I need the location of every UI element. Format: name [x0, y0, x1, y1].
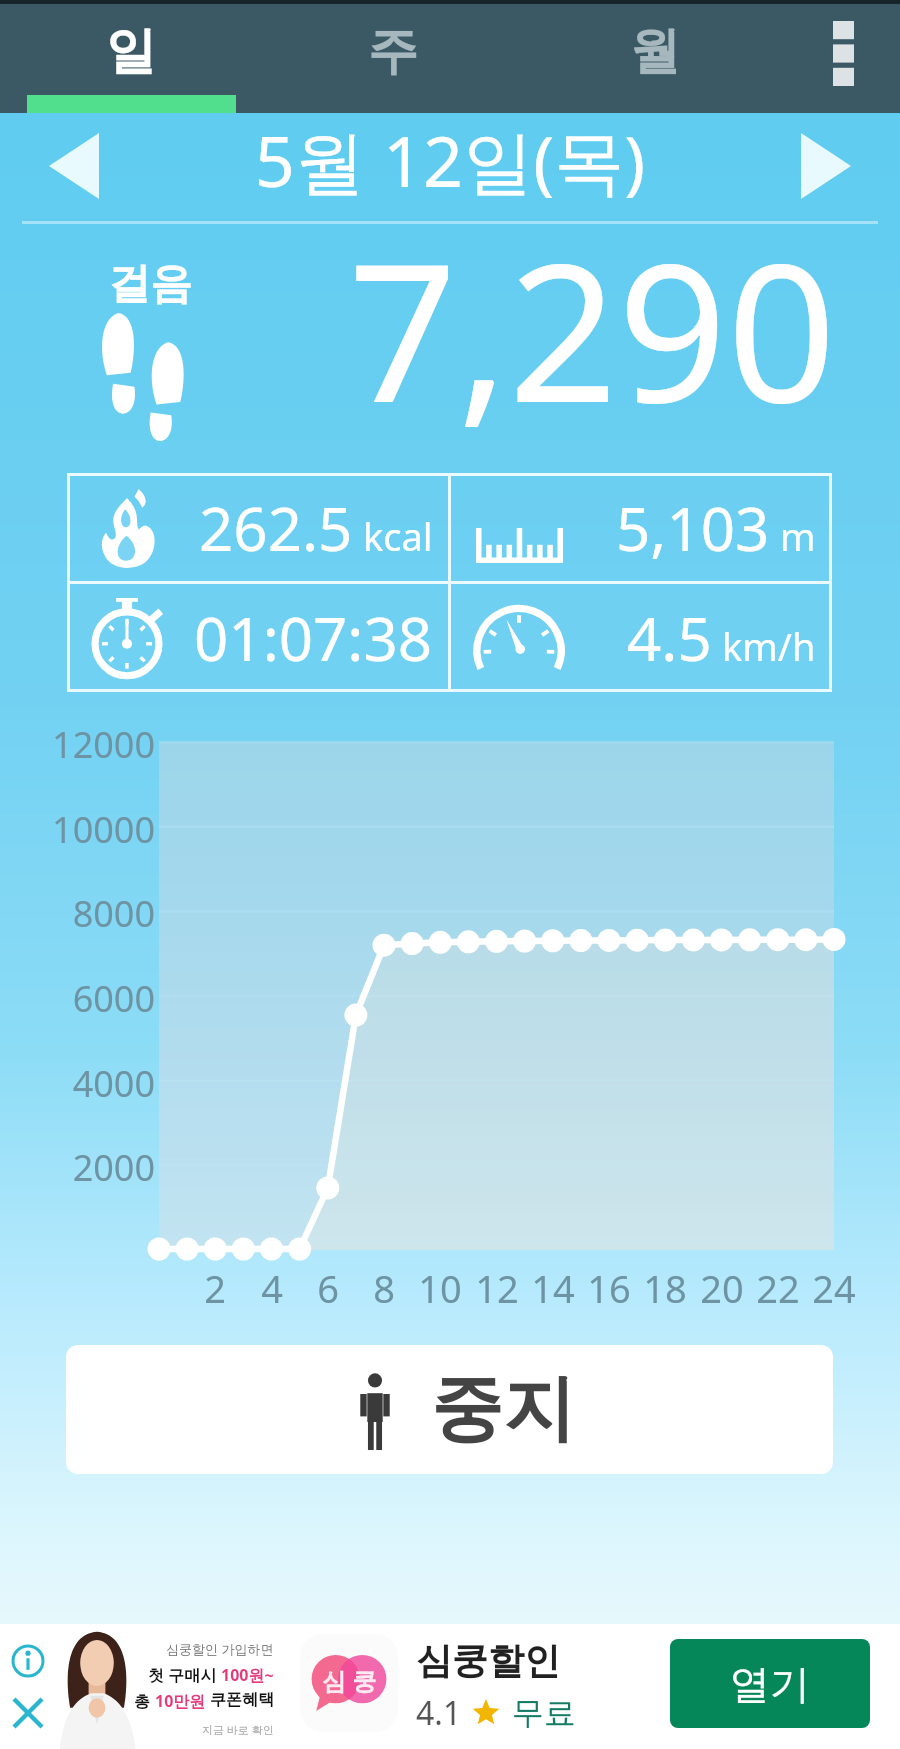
- staticText: km/h: [722, 620, 816, 672]
- button[interactable]: Advertisement: 심쿵할인: [50, 1624, 670, 1749]
- staticText: 10만원: [155, 1690, 210, 1712]
- staticText: 262.5: [199, 487, 353, 569]
- staticText: 4: [232, 1262, 312, 1314]
- staticText: 16: [569, 1262, 649, 1314]
- staticText: 10: [400, 1262, 480, 1314]
- staticText: 7,290: [348, 198, 837, 458]
- staticText: 주: [368, 20, 418, 83]
- button[interactable]: More options: [786, 0, 900, 113]
- staticText: 01:07:38: [194, 597, 433, 679]
- button[interactable]: Previous day: [24, 122, 124, 210]
- staticText: 4.1: [416, 1691, 462, 1735]
- staticText: 심쿵할인 가입하면: [166, 1640, 274, 1658]
- staticText: 5,103: [616, 487, 770, 569]
- button[interactable]: 일: [0, 0, 262, 113]
- staticText: 무료: [512, 1693, 576, 1733]
- staticText: 12000: [0, 720, 155, 769]
- staticText: 열기: [730, 1659, 810, 1709]
- staticText: 4.5: [627, 597, 712, 679]
- button[interactable]: 열기: [670, 1639, 870, 1728]
- staticText: 8000: [0, 889, 155, 938]
- button[interactable]: 주: [262, 0, 524, 113]
- staticText: 심 쿵: [322, 1664, 377, 1697]
- staticText: 2: [175, 1262, 255, 1314]
- staticText: kcal: [363, 510, 433, 562]
- staticText: 12: [457, 1262, 537, 1314]
- staticText: 지금 바로 확인: [202, 1722, 274, 1737]
- button[interactable]: Ad info: [7, 1640, 49, 1682]
- staticText: 중지: [431, 1364, 575, 1455]
- staticText: 20: [682, 1262, 762, 1314]
- staticText: m: [780, 510, 816, 562]
- button[interactable]: 중지: [66, 1345, 833, 1474]
- button[interactable]: 월: [524, 0, 786, 113]
- staticText: 5월 12일(목): [0, 112, 900, 208]
- staticText: 18: [625, 1262, 705, 1314]
- staticText: 쿠폰혜택: [210, 1690, 274, 1710]
- staticText: 24: [794, 1262, 874, 1314]
- staticText: 14: [513, 1262, 593, 1314]
- staticText: 8: [344, 1262, 424, 1314]
- staticText: 4000: [0, 1059, 155, 1108]
- staticText: 일: [106, 20, 156, 83]
- staticText: 첫 구매시: [148, 1664, 221, 1686]
- staticText: 10000: [0, 805, 155, 854]
- staticText: 심쿵할인: [416, 1638, 560, 1683]
- staticText: 총: [134, 1690, 155, 1712]
- staticText: 100원~: [221, 1664, 274, 1686]
- staticText: 월: [630, 20, 680, 83]
- staticText: 22: [738, 1262, 818, 1314]
- staticText: 6: [288, 1262, 368, 1314]
- staticText: 걸음: [108, 258, 192, 311]
- staticText: 6000: [0, 974, 155, 1023]
- button[interactable]: Next day: [776, 122, 876, 210]
- staticText: 2000: [0, 1143, 155, 1192]
- button[interactable]: Close ad: [7, 1692, 49, 1734]
